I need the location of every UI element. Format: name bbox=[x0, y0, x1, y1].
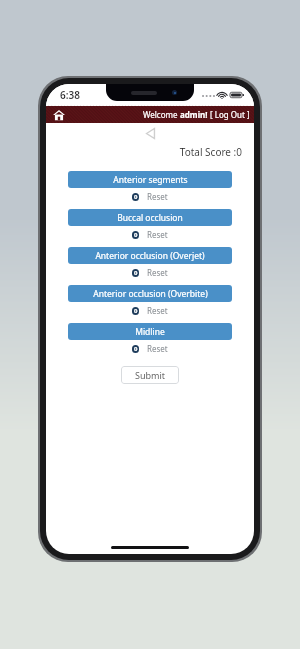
button[interactable]: Welcome bbox=[143, 109, 250, 120]
staticText: Anterior segments bbox=[113, 174, 188, 186]
staticText: Reset bbox=[147, 267, 168, 278]
button[interactable]: Buccal occlusion bbox=[68, 209, 232, 226]
staticText: Midline bbox=[135, 326, 165, 338]
staticText: 0 bbox=[134, 345, 138, 353]
button[interactable]: Home bbox=[51, 107, 67, 123]
button[interactable]: Submit bbox=[121, 366, 179, 384]
button[interactable]: Anterior segments bbox=[68, 171, 232, 188]
staticText: 0 bbox=[134, 269, 138, 277]
button[interactable]: Anterior occlusion (Overjet) bbox=[68, 247, 232, 264]
staticText: [ Log Out ] bbox=[208, 109, 250, 120]
staticText: Anterior occlusion (Overjet) bbox=[95, 250, 205, 262]
staticText: Anterior occlusion (Overbite) bbox=[93, 288, 208, 300]
staticText: Total Score :0 bbox=[46, 145, 242, 159]
button[interactable]: Midline bbox=[68, 323, 232, 340]
other: Score 0 bbox=[132, 307, 139, 315]
other: Score 0 bbox=[132, 345, 139, 353]
staticText: Welcome bbox=[143, 109, 180, 120]
button[interactable]: Reset bbox=[147, 191, 168, 202]
staticText: Buccal occlusion bbox=[117, 212, 183, 224]
button[interactable]: Reset bbox=[147, 305, 168, 316]
staticText: 0 bbox=[134, 193, 138, 201]
button[interactable]: Anterior occlusion (Overbite) bbox=[68, 285, 232, 302]
button[interactable]: Reset bbox=[147, 229, 168, 240]
other: Score 0 bbox=[132, 193, 139, 201]
staticText: Reset bbox=[147, 191, 168, 202]
other: Score 0 bbox=[132, 231, 139, 239]
button[interactable]: Reset bbox=[147, 343, 168, 354]
staticText: Reset bbox=[147, 343, 168, 354]
staticText: 6:38 bbox=[60, 88, 80, 102]
other: Score 0 bbox=[132, 269, 139, 277]
button[interactable]: Back bbox=[141, 124, 159, 142]
staticText: 0 bbox=[134, 307, 138, 315]
staticText: admin! bbox=[180, 109, 208, 120]
staticText: Reset bbox=[147, 305, 168, 316]
staticText: 0 bbox=[134, 231, 138, 239]
staticText: Submit bbox=[135, 369, 166, 381]
button[interactable]: Reset bbox=[147, 267, 168, 278]
staticText: Reset bbox=[147, 229, 168, 240]
